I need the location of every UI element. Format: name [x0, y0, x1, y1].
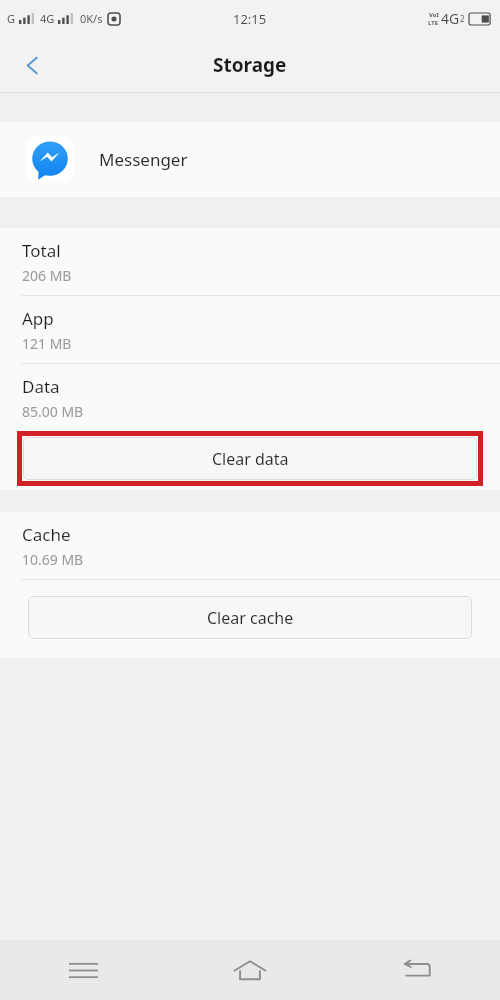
button[interactable]: Back — [9, 42, 55, 88]
staticText: 0K/s — [80, 11, 103, 26]
staticText: Clear cache — [207, 607, 294, 629]
button[interactable]: Clear cache — [28, 596, 472, 639]
staticText: Data — [22, 375, 60, 398]
button[interactable]: Menu — [0, 940, 166, 1000]
staticText: 85.00 MB — [22, 402, 84, 421]
staticText: 10.69 MB — [22, 550, 84, 569]
staticText: 121 MB — [22, 334, 72, 353]
staticText: 2 — [460, 13, 465, 24]
staticText: App — [22, 307, 54, 330]
staticText: Cache — [22, 523, 71, 546]
staticText: VoI — [429, 11, 439, 19]
staticText: Total — [22, 239, 61, 262]
button[interactable]: Clear data — [23, 437, 477, 480]
staticText: Clear data — [212, 448, 289, 470]
button[interactable]: Home — [166, 940, 333, 1000]
staticText: LTE — [428, 19, 439, 27]
staticText: 206 MB — [22, 266, 72, 285]
button[interactable]: Back — [333, 940, 500, 1000]
staticText: Messenger — [99, 148, 188, 171]
staticText: Storage — [213, 52, 287, 78]
staticText: 12:15 — [233, 10, 267, 28]
staticText: G — [7, 11, 16, 26]
staticText: 4G — [40, 11, 55, 26]
button[interactable]: Messenger — [0, 122, 500, 197]
staticText: 4G — [441, 9, 460, 28]
